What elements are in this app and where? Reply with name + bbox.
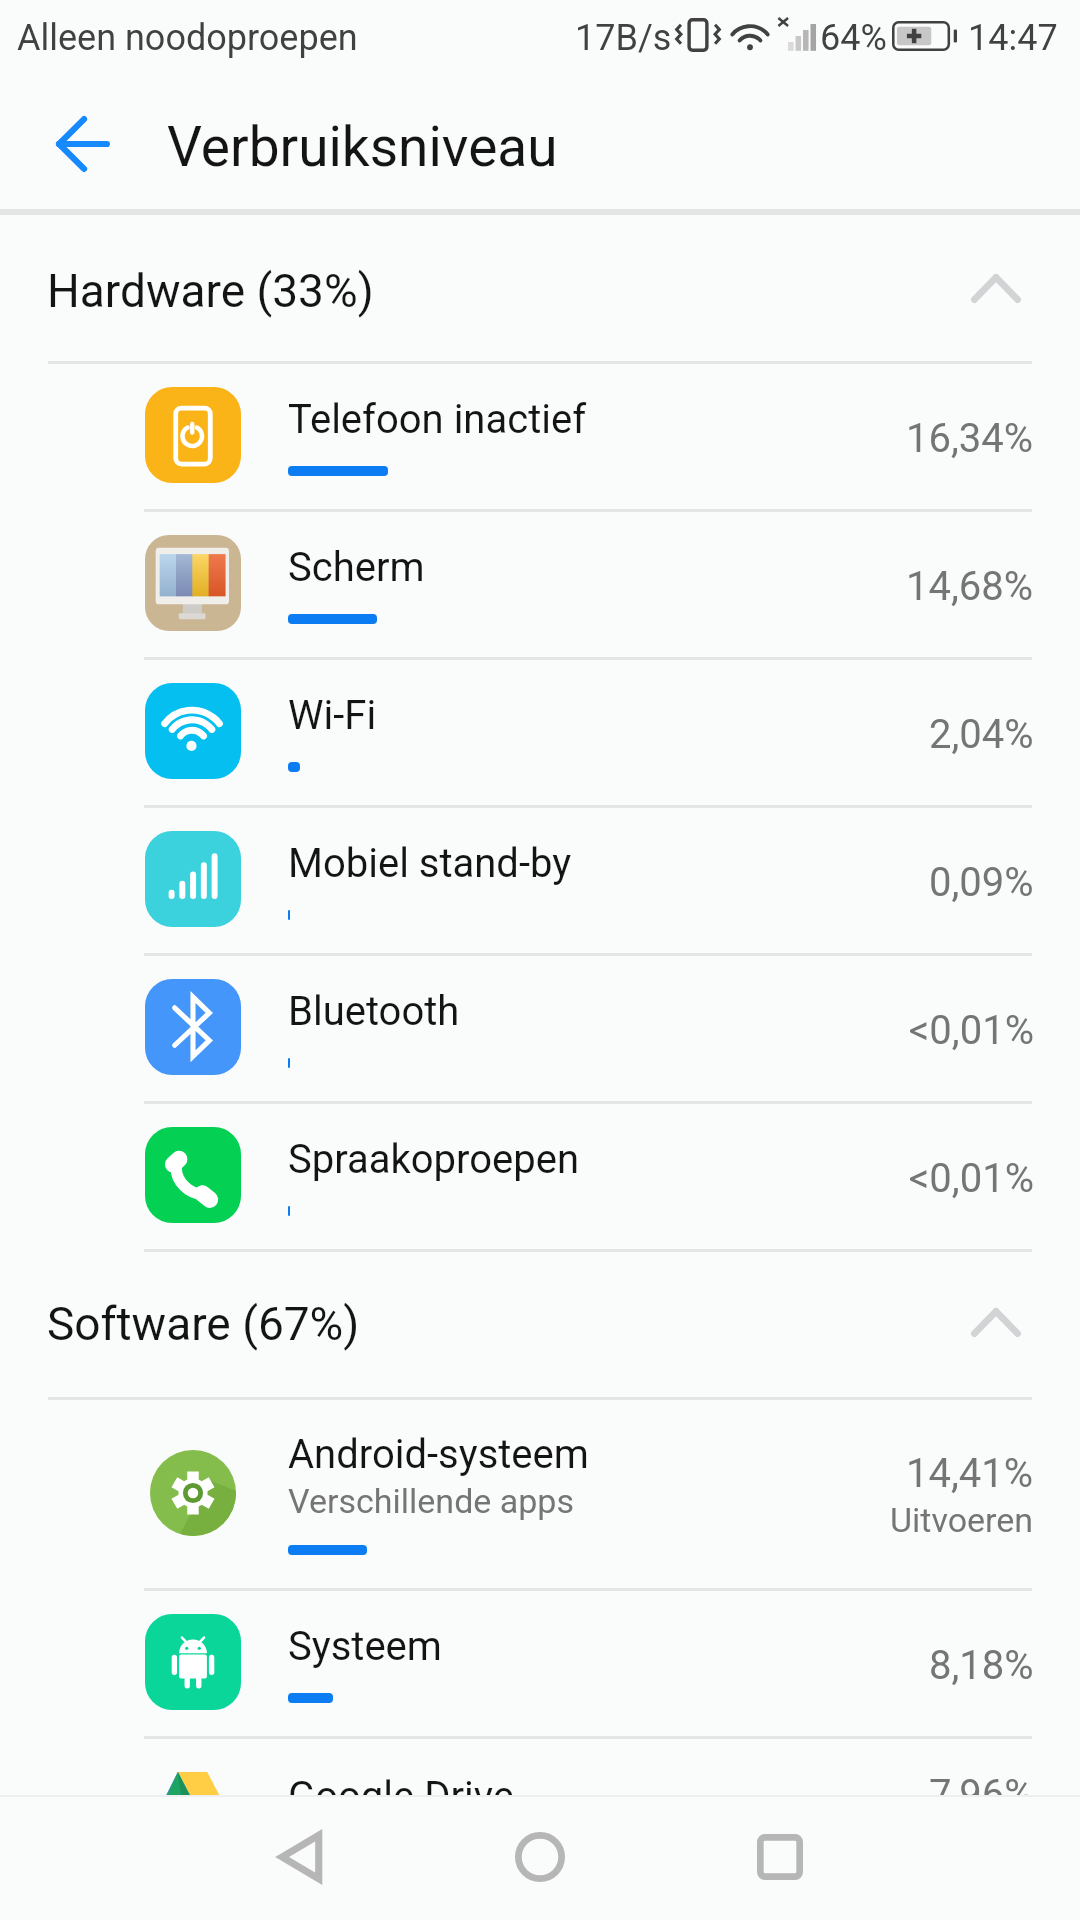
staticText: Scherm [288, 544, 425, 591]
staticText: Google Drive [288, 1773, 515, 1795]
staticText: 17B/s [575, 17, 672, 59]
staticText: 0,09% [929, 859, 1034, 906]
button[interactable]: Spraakoproepen [0, 1104, 1080, 1252]
staticText: <0,01% [909, 1155, 1034, 1202]
button[interactable]: Systeem [0, 1591, 1080, 1739]
staticText: Mobiel stand-by [288, 840, 572, 887]
staticText: Systeem [288, 1623, 442, 1670]
button[interactable]: Google Drive [0, 1739, 1080, 1795]
other: Collapse [971, 1308, 1021, 1337]
staticText: 16,34% [906, 415, 1034, 462]
staticText: Verbruiksniveau [167, 115, 558, 179]
staticText: 2,04% [929, 711, 1034, 758]
button[interactable]: Back [37, 98, 129, 190]
staticText: Software (67%) [47, 1297, 360, 1351]
button[interactable]: Home [480, 1797, 600, 1917]
staticText: Alleen noodoproepen [17, 17, 358, 59]
staticText: Verschillende apps [288, 1481, 575, 1521]
staticText: 14,68% [906, 563, 1034, 610]
button[interactable]: Bluetooth [0, 956, 1080, 1104]
button[interactable]: Back [240, 1797, 360, 1917]
button[interactable]: Hardware (33%) [0, 215, 1080, 364]
staticText: 14,41% [906, 1450, 1034, 1497]
other: Collapse [971, 274, 1021, 303]
button[interactable]: Recent apps [720, 1797, 840, 1917]
button[interactable]: Software (67%) [0, 1252, 1080, 1400]
staticText: <0,01% [909, 1007, 1034, 1054]
staticText: Hardware (33%) [47, 264, 374, 318]
staticText: Uitvoeren [890, 1500, 1034, 1540]
staticText: Spraakoproepen [288, 1136, 579, 1183]
staticText: 7,96% [929, 1771, 1034, 1795]
staticText: Bluetooth [288, 988, 460, 1035]
staticText: Android-systeem [288, 1431, 589, 1478]
button[interactable]: Mobiel stand-by [0, 808, 1080, 956]
staticText: Wi-Fi [288, 692, 377, 739]
staticText: 8,18% [929, 1642, 1034, 1689]
button[interactable]: Telefoon inactief [0, 364, 1080, 512]
button[interactable]: Android-systeem [0, 1400, 1080, 1591]
staticText: 64% [820, 17, 887, 59]
button[interactable]: Wi-Fi [0, 660, 1080, 808]
staticText: 14:47 [968, 17, 1058, 59]
button[interactable]: Scherm [0, 512, 1080, 660]
staticText: Telefoon inactief [288, 396, 587, 443]
